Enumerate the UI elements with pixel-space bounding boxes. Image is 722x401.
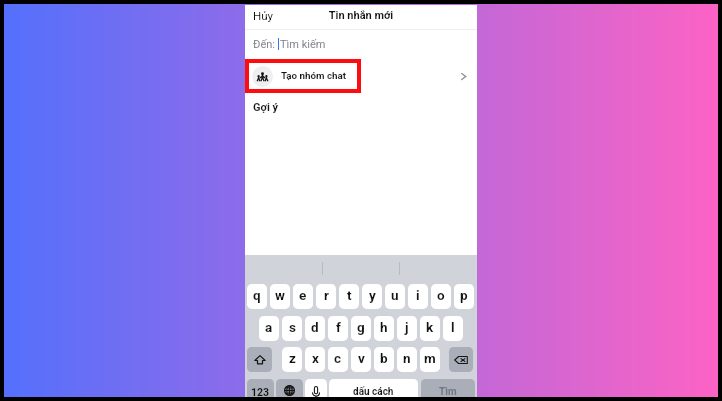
button[interactable]: Backspace [449, 347, 473, 372]
button[interactable]: o [431, 284, 451, 309]
staticText: Tìm [439, 386, 457, 398]
staticText: Tin nhắn mới [245, 9, 477, 22]
button[interactable]: q [247, 284, 267, 309]
button[interactable]: Voice input [305, 379, 327, 401]
staticText: g [357, 319, 365, 335]
button[interactable]: x [305, 347, 325, 372]
staticText: 123 [251, 386, 270, 398]
button[interactable]: Tạo nhóm chat [245, 61, 477, 92]
staticText: q [253, 287, 261, 303]
button[interactable]: b [374, 347, 394, 372]
button[interactable]: a [259, 316, 279, 341]
button[interactable]: v [351, 347, 371, 372]
staticText: o [437, 287, 445, 303]
button[interactable]: z [282, 347, 302, 372]
button[interactable]: j [397, 316, 417, 341]
staticText: Đến: [253, 38, 275, 51]
staticText: e [299, 287, 307, 303]
staticText: dấu cách [353, 386, 394, 398]
button[interactable]: Hủy [253, 9, 273, 22]
other: Open [458, 71, 469, 82]
button[interactable]: w [270, 284, 290, 309]
button[interactable]: p [454, 284, 474, 309]
staticText: k [426, 319, 434, 335]
button[interactable]: n [397, 347, 417, 372]
staticText: Gợi ý [253, 101, 279, 114]
button[interactable]: i [408, 284, 428, 309]
button[interactable]: dấu cách [329, 379, 418, 401]
button[interactable]: f [328, 316, 348, 341]
button[interactable]: 123 [247, 379, 274, 401]
staticText: i [416, 287, 420, 303]
staticText: y [369, 287, 376, 303]
staticText: u [391, 287, 399, 303]
staticText: x [312, 350, 319, 366]
button[interactable]: Tìm [421, 379, 475, 401]
button[interactable]: t [339, 284, 359, 309]
staticText: j [405, 319, 409, 335]
button[interactable]: s [282, 316, 302, 341]
staticText: r [324, 287, 329, 303]
staticText: d [311, 319, 319, 335]
staticText: Tạo nhóm chat [281, 70, 347, 81]
button[interactable]: Shift [247, 347, 272, 372]
button[interactable]: Change keyboard language [276, 379, 303, 401]
button[interactable]: d [305, 316, 325, 341]
button[interactable]: k [420, 316, 440, 341]
staticText: l [451, 319, 455, 335]
button[interactable]: m [420, 347, 440, 372]
button[interactable]: u [385, 284, 405, 309]
staticText: m [424, 350, 436, 366]
button[interactable]: e [293, 284, 313, 309]
button[interactable]: y [362, 284, 382, 309]
button[interactable]: c [328, 347, 348, 372]
staticText: s [289, 319, 296, 335]
staticText: v [358, 350, 365, 366]
staticText: b [380, 350, 388, 366]
staticText: Tìm kiếm [280, 38, 326, 51]
staticText: w [275, 287, 285, 303]
button[interactable]: g [351, 316, 371, 341]
staticText: z [289, 350, 296, 366]
staticText: f [336, 319, 341, 335]
button[interactable]: h [374, 316, 394, 341]
button[interactable]: l [443, 316, 463, 341]
button[interactable]: r [316, 284, 336, 309]
staticText: p [460, 287, 468, 303]
staticText: n [403, 350, 411, 366]
staticText: t [347, 287, 352, 303]
staticText: a [265, 319, 273, 335]
staticText: h [380, 319, 388, 335]
staticText: c [334, 350, 342, 366]
